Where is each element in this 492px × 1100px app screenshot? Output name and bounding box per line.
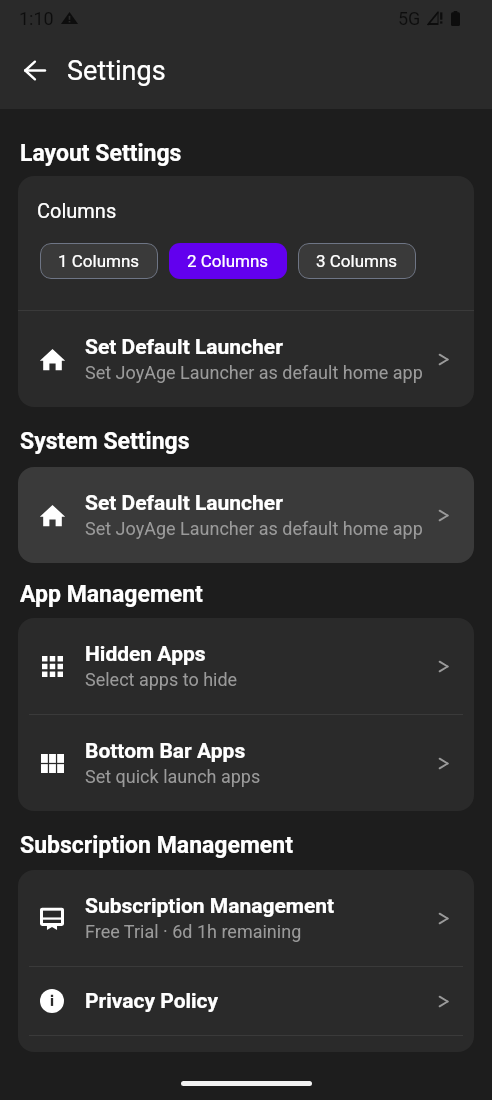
staticText: Select apps to hide xyxy=(85,669,238,690)
staticText: Settings xyxy=(67,55,166,87)
button[interactable]: Bottom Bar Apps xyxy=(18,715,474,811)
staticText: Hidden Apps xyxy=(85,642,206,667)
button[interactable]: Set Default Launcher xyxy=(18,467,474,563)
staticText: App Management xyxy=(20,581,203,608)
staticText: Set Default Launcher xyxy=(85,335,283,360)
button[interactable]: Set Default Launcher xyxy=(18,311,474,407)
button[interactable]: Subscription Management xyxy=(18,870,474,966)
staticText: 2 Columns xyxy=(187,251,269,271)
staticText: 1 Columns xyxy=(58,251,140,271)
staticText: 5G xyxy=(398,8,421,29)
button[interactable]: 1 Columns xyxy=(40,243,158,279)
button[interactable]: 3 Columns xyxy=(298,243,416,279)
staticText: Layout Settings xyxy=(20,140,182,167)
staticText: Set quick launch apps xyxy=(85,766,261,787)
button[interactable]: 2 Columns xyxy=(169,243,287,279)
staticText: 1:10 xyxy=(19,8,54,29)
staticText: Set Default Launcher xyxy=(85,491,283,516)
staticText: Free Trial · 6d 1h remaining xyxy=(85,921,302,942)
staticText: Privacy Policy xyxy=(85,989,219,1014)
button[interactable]: Privacy Policy xyxy=(18,967,474,1035)
staticText: Subscription Management xyxy=(20,832,293,859)
staticText: Columns xyxy=(37,199,117,222)
staticText: System Settings xyxy=(20,428,190,455)
staticText: 3 Columns xyxy=(316,251,398,271)
staticText: Set JoyAge Launcher as default home app xyxy=(85,518,423,539)
button[interactable]: Hidden Apps xyxy=(18,618,474,714)
button[interactable]: Back xyxy=(12,50,58,96)
staticText: Set JoyAge Launcher as default home app xyxy=(85,362,423,383)
staticText: Bottom Bar Apps xyxy=(85,739,246,764)
staticText: Subscription Management xyxy=(85,894,335,919)
